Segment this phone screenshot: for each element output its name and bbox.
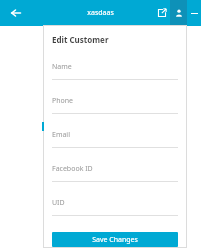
button[interactable]: Phone xyxy=(52,89,178,123)
staticText: Save Changes xyxy=(92,235,138,245)
button[interactable]: Save Changes xyxy=(52,232,178,247)
staticText: UID xyxy=(52,198,65,208)
staticText: Name xyxy=(52,62,72,72)
button[interactable]: Back xyxy=(8,5,24,21)
staticText: xasdaas xyxy=(87,8,114,18)
button[interactable]: Email xyxy=(52,123,178,157)
button[interactable]: UID xyxy=(52,191,178,225)
button[interactable]: Facebook ID xyxy=(52,157,178,191)
button[interactable]: Open external xyxy=(154,5,170,21)
button[interactable]: Name xyxy=(52,55,178,89)
staticText: Email xyxy=(52,130,70,140)
button[interactable]: Minimize xyxy=(187,6,201,20)
staticText: Facebook ID xyxy=(52,164,93,174)
staticText: Edit Customer xyxy=(52,34,109,45)
button[interactable]: Account xyxy=(170,0,187,26)
staticText: Phone xyxy=(52,96,74,106)
